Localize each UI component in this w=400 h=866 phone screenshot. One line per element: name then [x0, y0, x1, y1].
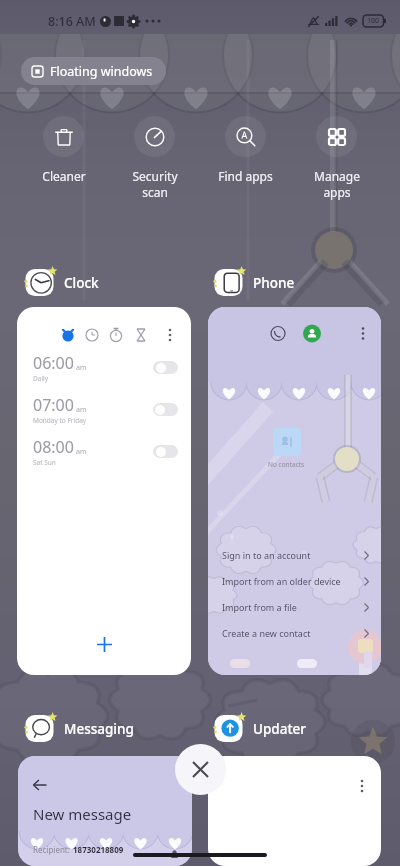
button[interactable]: Toggle alarm 07:00 [153, 403, 178, 416]
staticText: 06:00 [33, 352, 74, 374]
button[interactable]: 08:00 [33, 436, 178, 467]
staticText: 100 [367, 16, 380, 26]
button[interactable]: Find apps [200, 116, 291, 184]
staticText: Cleaner [42, 168, 86, 184]
button[interactable]: Import from an older device [222, 568, 369, 594]
button[interactable]: Toggle alarm 08:00 [153, 445, 178, 458]
button[interactable]: Create a new contact [222, 620, 369, 646]
button[interactable]: Import from a file [222, 594, 369, 620]
button[interactable]: Toggle alarm 06:00 [153, 361, 178, 374]
staticText: Updater [253, 720, 307, 738]
button[interactable]: No contacts [208, 307, 381, 675]
staticText: No contacts [268, 460, 305, 469]
button[interactable]: More options [208, 756, 381, 866]
staticText: Daily [33, 374, 49, 383]
button[interactable]: Add alarm [90, 630, 118, 658]
button[interactable]: Messaging [25, 713, 134, 744]
staticText: Floating windows [50, 63, 153, 80]
staticText: Sat Sun [33, 458, 56, 467]
staticText: Import from an older device [222, 575, 341, 587]
staticText: am [76, 405, 87, 415]
staticText: Create a new contact [222, 627, 311, 639]
staticText: Monday to Friday [33, 416, 87, 425]
staticText: 08:00 [33, 436, 74, 458]
button[interactable]: Phone [214, 267, 295, 298]
staticText: Messaging [64, 720, 134, 738]
staticText: Import from a file [222, 601, 297, 613]
button[interactable]: 06:00 [17, 307, 191, 675]
staticText: Recipient: [33, 844, 70, 855]
button[interactable]: Security scan [109, 116, 200, 200]
button[interactable]: 06:00 [33, 352, 178, 383]
staticText: Manage apps [314, 168, 360, 200]
button[interactable]: Sign in to an account [222, 542, 369, 568]
button[interactable]: More options [353, 776, 371, 794]
button[interactable]: Floating windows [21, 57, 166, 85]
staticText: New message [33, 804, 132, 824]
staticText: am [76, 363, 87, 373]
staticText: am [76, 447, 87, 457]
staticText: 07:00 [33, 394, 74, 416]
button[interactable]: 07:00 [33, 394, 178, 425]
staticText: 18730218809 [73, 844, 124, 855]
staticText: Security scan [132, 168, 178, 200]
staticText: Phone [253, 274, 295, 292]
staticText: 8:16 AM [48, 13, 96, 30]
staticText: Clock [64, 274, 99, 292]
button[interactable]: Updater [214, 713, 307, 744]
button[interactable]: New message [18, 756, 192, 866]
button[interactable]: Cleaner [18, 116, 109, 184]
staticText: Find apps [218, 168, 273, 184]
button[interactable]: Manage apps [291, 116, 382, 200]
button[interactable]: Clock [25, 267, 99, 298]
button[interactable]: Close all [175, 744, 226, 795]
staticText: Sign in to an account [222, 549, 311, 561]
